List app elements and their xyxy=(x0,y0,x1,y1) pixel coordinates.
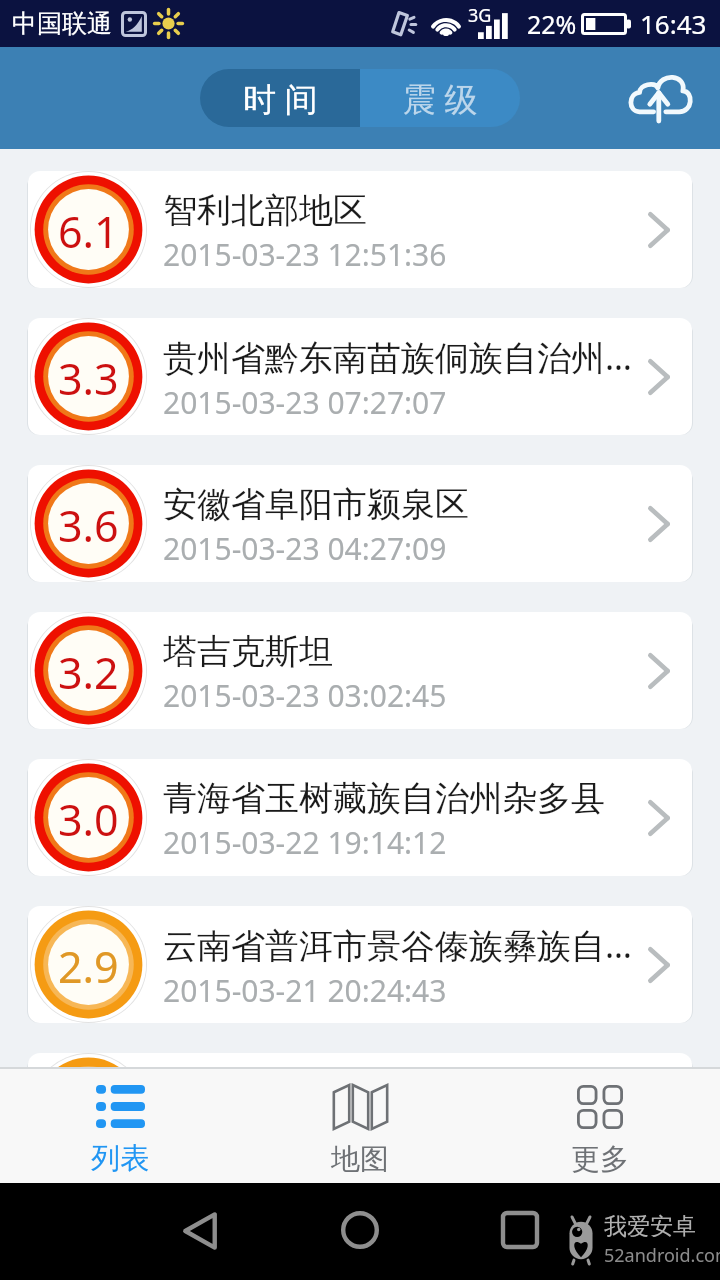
staticText: 2.9 xyxy=(58,937,119,996)
staticText: 列表 xyxy=(91,1140,149,1177)
button[interactable]: Upload to cloud xyxy=(610,61,708,149)
staticText: 安徽省阜阳市颍泉区 xyxy=(163,483,469,526)
staticText: 3.3 xyxy=(58,349,119,408)
button[interactable]: 时 间 xyxy=(200,69,360,127)
staticText: 我爱安卓 xyxy=(604,1212,696,1241)
button[interactable]: Home xyxy=(325,1195,395,1265)
staticText: 52android.com xyxy=(604,1243,720,1268)
button[interactable]: 更多 xyxy=(480,1069,720,1183)
button[interactable]: Recent apps xyxy=(485,1195,555,1265)
staticText: 2015-03-23 07:27:07 xyxy=(163,382,447,423)
staticText: 震 级 xyxy=(403,76,478,121)
staticText: 3.0 xyxy=(58,790,119,849)
button[interactable]: 塔吉克斯坦 xyxy=(28,612,692,729)
staticText: 时 间 xyxy=(243,76,318,121)
staticText: 2015-03-23 03:02:45 xyxy=(163,675,447,716)
button[interactable]: 贵州省黔东南苗族侗族自治州… xyxy=(28,318,692,435)
button[interactable]: 列表 xyxy=(0,1069,240,1183)
staticText: 青海省玉树藏族自治州杂多县 xyxy=(163,777,605,820)
button[interactable]: 安徽省阜阳市颍泉区 xyxy=(28,465,692,582)
button[interactable]: 震 级 xyxy=(360,69,520,127)
staticText: 地图 xyxy=(331,1141,389,1178)
staticText: 2015-03-21 20:24:43 xyxy=(163,970,447,1011)
staticText: 6.1 xyxy=(58,202,119,261)
staticText: 中国联通 xyxy=(12,8,112,39)
staticText: 2015-03-22 19:14:12 xyxy=(163,822,447,863)
staticText: 3.6 xyxy=(58,496,119,555)
staticText: 智利北部地区 xyxy=(163,189,367,232)
staticText: 贵州省黔东南苗族侗族自治州… xyxy=(163,334,632,380)
staticText: 2015-03-23 04:27:09 xyxy=(163,528,447,569)
button[interactable]: 智利北部地区 xyxy=(28,171,692,288)
staticText: 更多 xyxy=(571,1141,629,1178)
staticText: 16:43 xyxy=(640,6,707,41)
staticText: 2015-03-23 12:51:36 xyxy=(163,234,447,275)
button[interactable]: 云南省普洱市景谷傣族彝族自… xyxy=(28,906,692,1023)
button[interactable]: 新疆维吾尔自治区 xyxy=(28,1053,692,1067)
staticText: 22% xyxy=(527,7,577,41)
staticText: 3G xyxy=(468,3,492,28)
button[interactable]: 青海省玉树藏族自治州杂多县 xyxy=(28,759,692,876)
button[interactable]: Back xyxy=(165,1196,235,1266)
button[interactable]: 地图 xyxy=(240,1069,480,1183)
staticText: 3.2 xyxy=(58,643,119,702)
staticText: 塔吉克斯坦 xyxy=(163,630,333,673)
staticText: 云南省普洱市景谷傣族彝族自… xyxy=(163,922,632,968)
